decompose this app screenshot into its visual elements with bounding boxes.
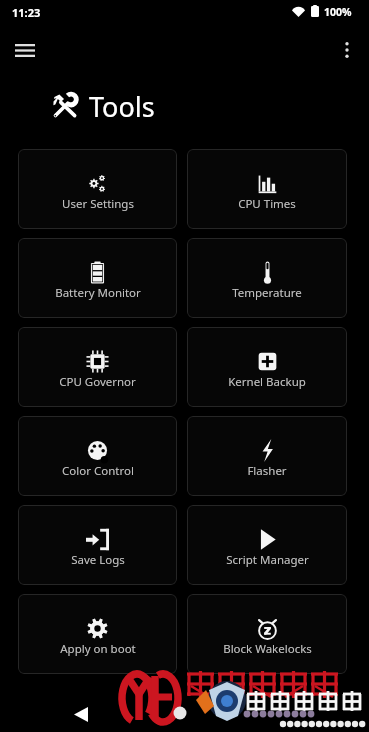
- button[interactable]: CPU Times: [187, 149, 347, 229]
- staticText: Block Wakelocks: [223, 641, 312, 657]
- button[interactable]: Temperature: [187, 238, 347, 318]
- staticText: 100%: [324, 5, 352, 19]
- staticText: Kernel Backup: [228, 374, 306, 390]
- staticText: Flasher: [247, 463, 287, 479]
- staticText: Temperature: [232, 285, 302, 301]
- button[interactable]: Menu: [9, 34, 41, 66]
- staticText: Save Logs: [71, 552, 125, 568]
- staticText: CPU Times: [238, 196, 296, 212]
- staticText: 11:23: [12, 5, 41, 20]
- staticText: User Settings: [62, 196, 134, 212]
- button[interactable]: Back: [64, 697, 98, 731]
- staticText: Script Manager: [226, 552, 309, 568]
- button[interactable]: Color Control: [18, 416, 177, 496]
- button[interactable]: Flasher: [187, 416, 347, 496]
- staticText: Apply on boot: [60, 641, 136, 657]
- button[interactable]: Save Logs: [18, 505, 177, 585]
- staticText: Color Control: [62, 463, 134, 479]
- staticText: Battery Monitor: [55, 285, 141, 301]
- button[interactable]: Battery Monitor: [18, 238, 177, 318]
- button[interactable]: Script Manager: [187, 505, 347, 585]
- staticText: Tools: [89, 88, 155, 125]
- button[interactable]: CPU Governor: [18, 327, 177, 407]
- staticText: CPU Governor: [59, 374, 136, 390]
- button[interactable]: More options: [331, 34, 363, 66]
- button[interactable]: Apply on boot: [18, 594, 177, 674]
- button[interactable]: User Settings: [18, 149, 177, 229]
- button[interactable]: Kernel Backup: [187, 327, 347, 407]
- button[interactable]: Block Wakelocks: [187, 594, 347, 674]
